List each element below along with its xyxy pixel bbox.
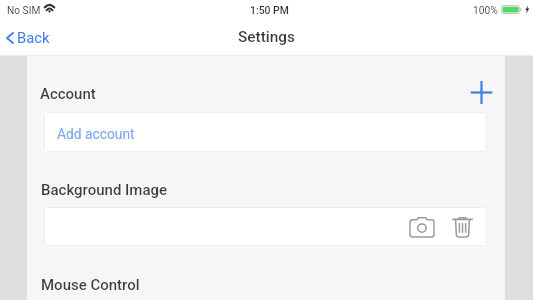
button[interactable]: Add account xyxy=(44,112,487,152)
staticText: Mouse Control xyxy=(41,276,140,294)
staticText: Account xyxy=(40,85,96,103)
button[interactable]: Back xyxy=(0,21,58,55)
staticText: Settings xyxy=(0,28,533,46)
button[interactable]: Take photo xyxy=(407,212,437,242)
button[interactable]: Add account xyxy=(466,77,497,108)
staticText: 100% xyxy=(473,5,498,17)
staticText: Back xyxy=(17,29,50,46)
staticText: Background Image xyxy=(41,181,167,199)
staticText: No SIM xyxy=(7,5,41,17)
staticText: Add account xyxy=(57,126,135,142)
button[interactable]: Delete image xyxy=(447,212,477,242)
staticText: 1:50 PM xyxy=(250,4,289,16)
